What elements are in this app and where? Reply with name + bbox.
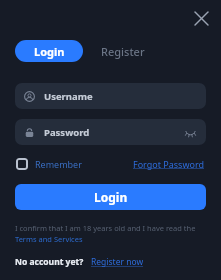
staticText: Forgot Password <box>133 158 205 170</box>
staticText: Password <box>44 126 90 139</box>
staticText: I confirm that I am 18 years old and I h… <box>15 223 206 244</box>
button[interactable]: Close <box>187 4 215 32</box>
button[interactable]: Login <box>15 40 83 62</box>
button[interactable]: Show password <box>183 125 197 139</box>
button[interactable]: Password <box>15 119 206 145</box>
staticText: Login <box>34 44 65 59</box>
staticText: Username <box>44 90 93 103</box>
button[interactable]: Forgot Password <box>132 156 206 172</box>
staticText: Login <box>94 189 128 205</box>
staticText: Register now <box>91 256 144 268</box>
staticText: Remember <box>35 158 82 170</box>
button[interactable]: Remember <box>15 156 83 172</box>
staticText: Register <box>101 44 145 59</box>
button[interactable]: Login <box>15 184 206 210</box>
button[interactable]: Register <box>95 40 151 62</box>
button[interactable]: Register now <box>90 255 145 269</box>
staticText: No account yet? <box>15 256 84 268</box>
button[interactable]: Username <box>15 83 206 109</box>
